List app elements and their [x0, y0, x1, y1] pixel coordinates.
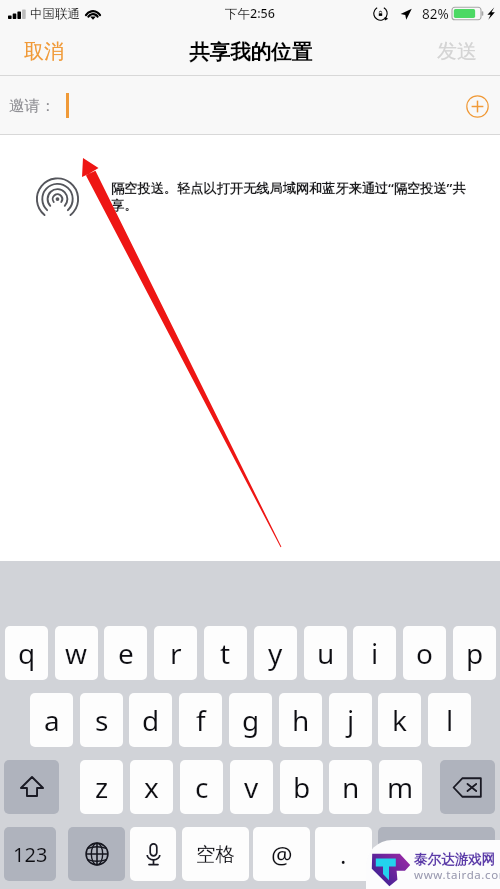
button[interactable]: f [179, 693, 222, 747]
button[interactable]: 空格 [182, 827, 249, 881]
button[interactable]: z [80, 760, 123, 814]
staticText: a [44, 701, 60, 739]
button[interactable]: v [230, 760, 273, 814]
button[interactable]: m [379, 760, 422, 814]
button[interactable]: d [129, 693, 172, 747]
staticText: m [387, 768, 414, 806]
button[interactable]: a [30, 693, 73, 747]
staticText: u [317, 634, 335, 672]
button[interactable]: y [254, 626, 297, 680]
staticText: 123 [13, 841, 48, 868]
staticText: 下午2:56 [225, 5, 275, 22]
staticText: 邀请： [9, 96, 56, 116]
staticText: 空格 [196, 842, 235, 867]
staticText: 82% [422, 5, 449, 23]
staticText: n [342, 768, 360, 806]
button[interactable]: @ [253, 827, 310, 881]
staticText: e [118, 634, 134, 672]
button[interactable]: c [180, 760, 223, 814]
button[interactable]: o [403, 626, 446, 680]
button[interactable]: Add contact [463, 92, 491, 120]
button[interactable]: 取消 [0, 27, 80, 76]
staticText: 隔空投送。轻点以打开无线局域网和蓝牙来通过“隔空投送”共享。 [111, 179, 469, 213]
staticText: f [196, 701, 206, 739]
button[interactable]: w [55, 626, 98, 680]
button[interactable]: n [329, 760, 372, 814]
staticText: q [18, 634, 36, 672]
staticText: p [466, 634, 484, 672]
button[interactable]: 换行 [378, 827, 495, 881]
staticText: x [144, 768, 159, 806]
button[interactable]: q [5, 626, 48, 680]
button[interactable]: i [353, 626, 396, 680]
button[interactable]: h [279, 693, 322, 747]
staticText: 中国联通 [30, 6, 80, 22]
staticText: 发送 [437, 39, 477, 64]
staticText: s [95, 701, 109, 739]
staticText: d [142, 701, 160, 739]
button[interactable]: Delete [440, 760, 495, 814]
staticText: v [244, 768, 259, 806]
button[interactable]: g [229, 693, 272, 747]
staticText: z [95, 768, 109, 806]
button[interactable]: . [315, 827, 372, 881]
staticText: www.tairda.com [414, 867, 500, 883]
button[interactable]: s [80, 693, 123, 747]
button[interactable]: j [329, 693, 372, 747]
button[interactable]: 发送 [421, 27, 500, 76]
staticText: 泰尔达游戏网 [414, 851, 495, 868]
staticText: l [446, 701, 454, 739]
staticText: t [220, 634, 231, 672]
staticText: . [340, 838, 347, 871]
staticText: w [65, 634, 88, 672]
button[interactable]: r [154, 626, 197, 680]
staticText: 换行 [417, 842, 456, 867]
staticText: c [195, 768, 209, 806]
button[interactable]: b [280, 760, 323, 814]
staticText: j [347, 701, 355, 739]
button[interactable]: p [453, 626, 496, 680]
staticText: @ [271, 838, 293, 871]
button[interactable]: t [204, 626, 247, 680]
button[interactable]: Dictation [130, 827, 176, 881]
staticText: r [170, 634, 182, 672]
button[interactable]: Shift [4, 760, 59, 814]
staticText: g [242, 701, 260, 739]
staticText: y [268, 634, 283, 672]
button[interactable]: 123 [4, 827, 56, 881]
staticText: o [416, 634, 433, 672]
staticText: i [371, 634, 379, 672]
button[interactable]: Switch keyboard [68, 827, 125, 881]
button[interactable]: u [304, 626, 347, 680]
button[interactable]: l [428, 693, 471, 747]
staticText: k [392, 701, 407, 739]
staticText: b [293, 768, 311, 806]
staticText: 共享我的位置 [189, 39, 312, 65]
button[interactable]: x [130, 760, 173, 814]
button[interactable]: e [104, 626, 147, 680]
button[interactable]: k [378, 693, 421, 747]
staticText: 取消 [24, 39, 64, 64]
staticText: h [292, 701, 310, 739]
